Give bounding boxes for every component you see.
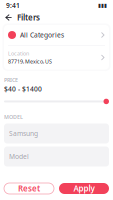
button[interactable]: Apply bbox=[59, 183, 109, 194]
button[interactable]: Reset bbox=[4, 183, 54, 194]
button[interactable]: Model bbox=[4, 146, 109, 166]
staticText: MODEL bbox=[4, 113, 23, 120]
staticText: $40 - $1400 bbox=[4, 85, 42, 93]
staticText: 9:41 bbox=[6, 1, 20, 10]
staticText: ▮▮▮ bbox=[98, 2, 107, 9]
button[interactable]: All Categories bbox=[4, 25, 109, 45]
staticText: Location bbox=[8, 50, 29, 57]
staticText: Apply bbox=[73, 183, 94, 194]
button[interactable]: Samsung bbox=[4, 123, 109, 143]
button[interactable]: Location bbox=[4, 45, 109, 69]
staticText: Samsung bbox=[9, 129, 38, 138]
staticText: Reset bbox=[18, 183, 40, 194]
staticText: PRICE bbox=[4, 76, 18, 84]
staticText: 87719, Mexico, US bbox=[8, 58, 52, 65]
staticText: Model bbox=[9, 152, 29, 161]
button[interactable]: Back bbox=[4, 11, 13, 23]
staticText: All Categories bbox=[20, 31, 64, 39]
staticText: Filters bbox=[17, 12, 40, 23]
